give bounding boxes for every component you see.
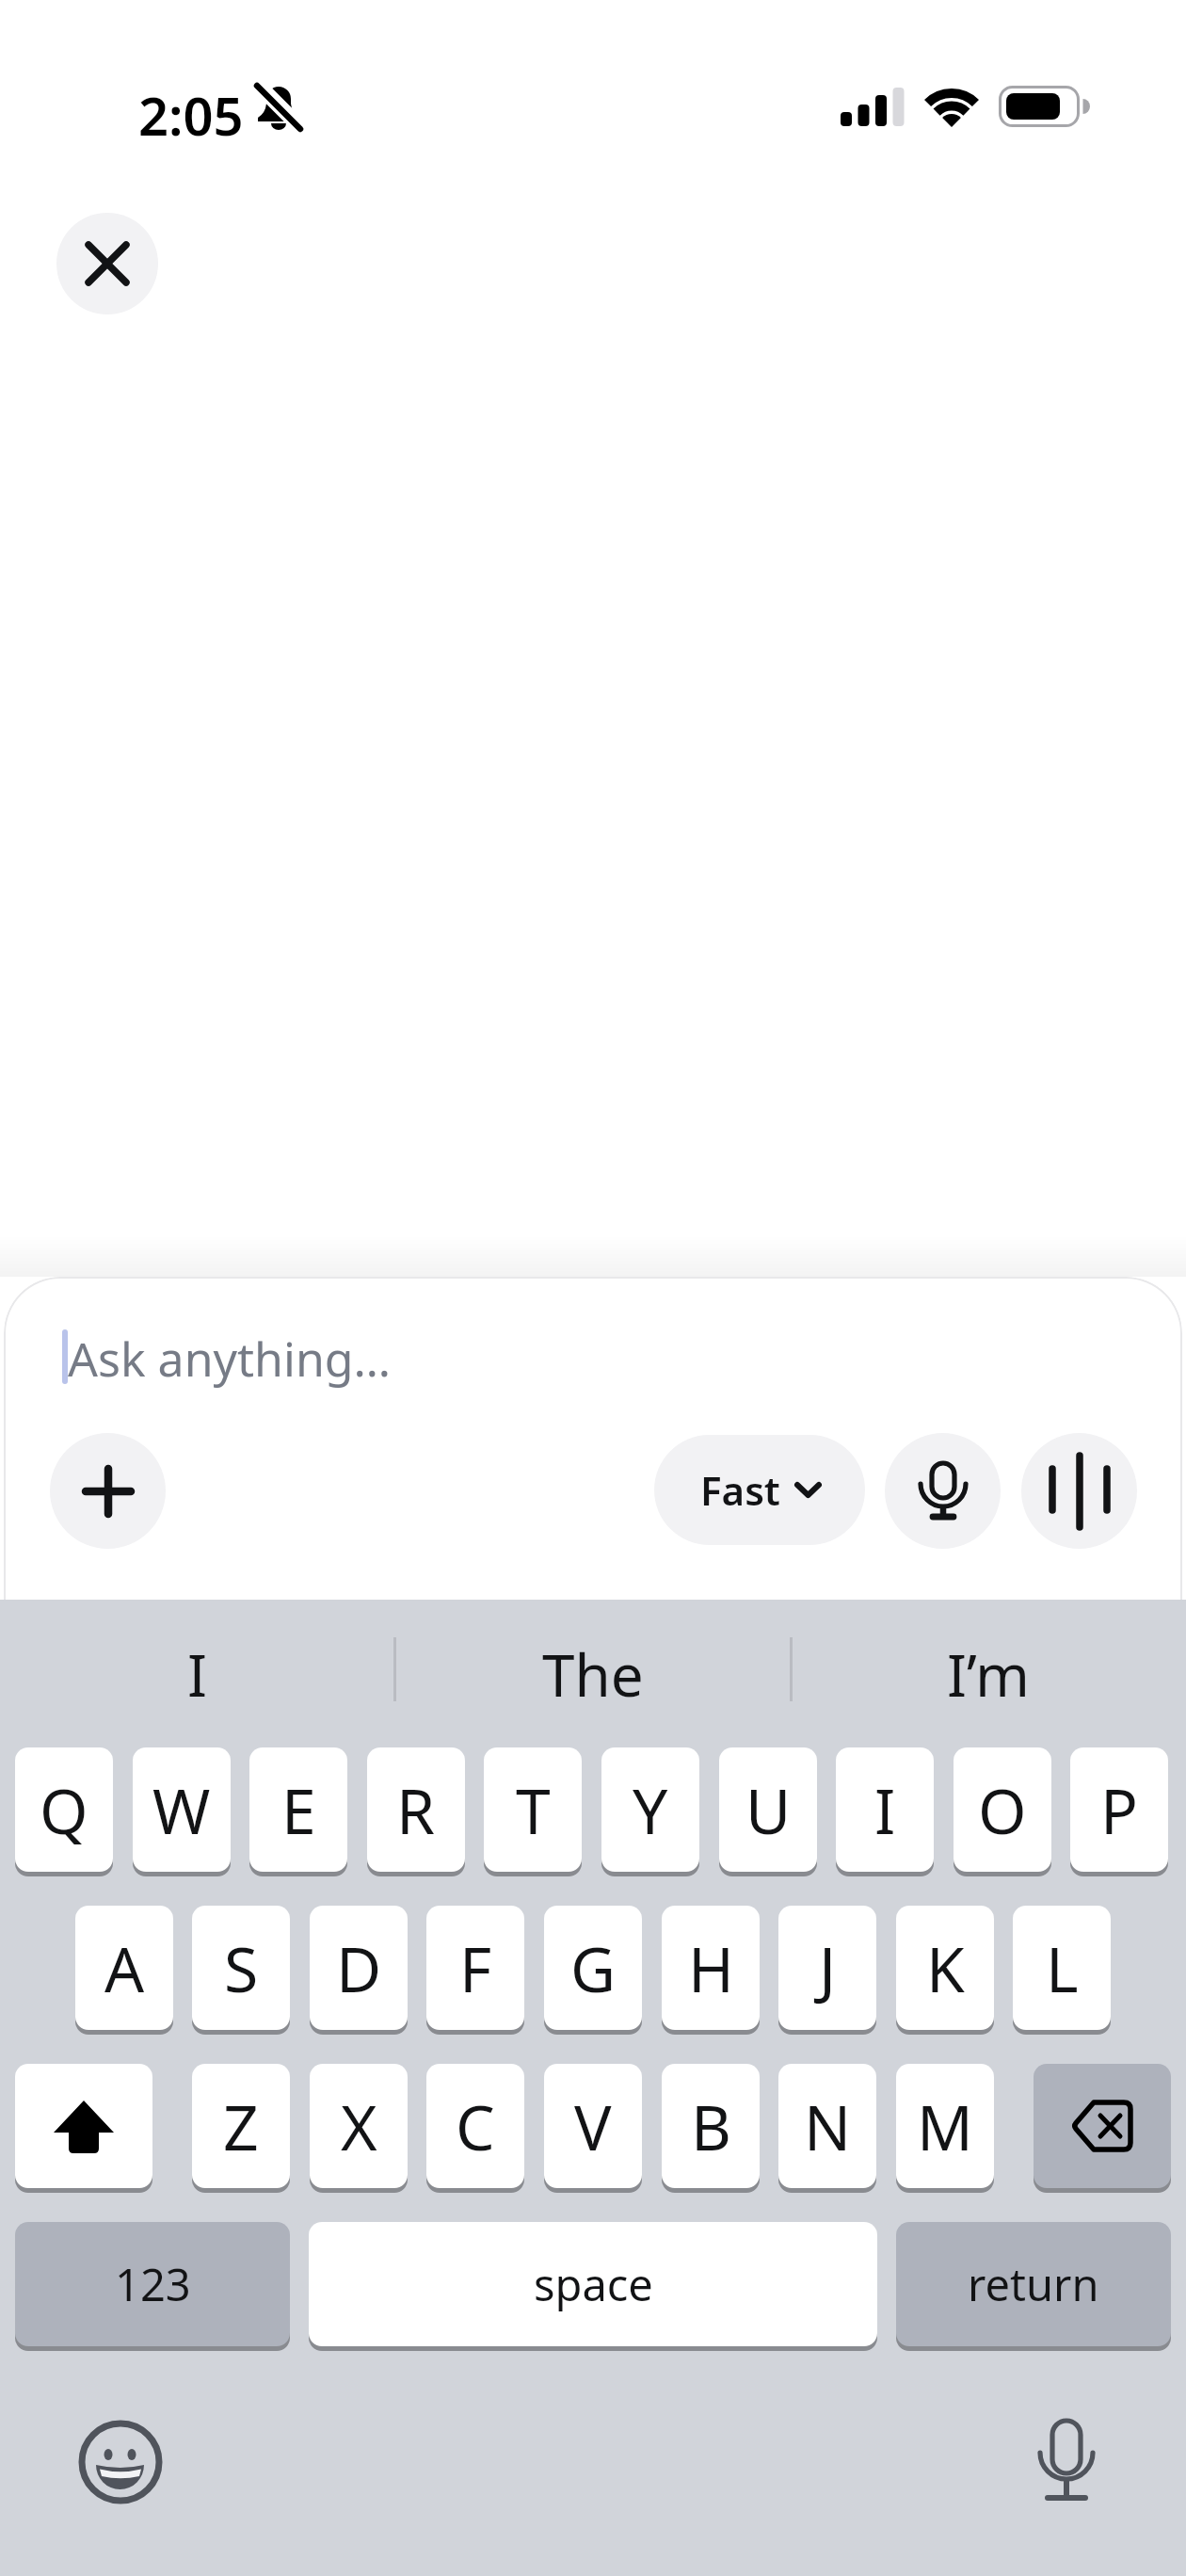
staticText: Fast [700,1463,780,1517]
staticText: B [691,2084,731,2168]
button[interactable]: A [75,1906,173,2030]
button[interactable]: R [367,1747,465,1872]
staticText: M [917,2084,973,2168]
button[interactable]: M [896,2064,994,2188]
button[interactable]: I’m [791,1600,1186,1747]
button[interactable]: Fast [654,1435,865,1545]
staticText: return [968,2254,1099,2314]
staticText: I [187,1634,208,1714]
button[interactable]: C [426,2064,524,2188]
button[interactable]: S [192,1906,290,2030]
staticText: I’m [947,1634,1030,1714]
button[interactable] [78,2420,163,2504]
button[interactable]: G [544,1906,642,2030]
button[interactable]: J [778,1906,876,2030]
staticText: Ask anything… [68,1327,392,1391]
button[interactable] [56,213,158,314]
staticText: D [336,1925,382,2010]
button[interactable]: The [395,1600,791,1747]
button[interactable]: K [896,1906,994,2030]
staticText: Q [40,1767,88,1852]
staticText: T [516,1767,551,1852]
button[interactable]: E [249,1747,347,1872]
button[interactable]: return [896,2222,1171,2346]
button[interactable] [50,1433,166,1549]
staticText: The [542,1634,644,1714]
button[interactable] [1021,1433,1137,1549]
staticText: S [224,1925,259,2010]
button[interactable]: I [836,1747,934,1872]
staticText: E [281,1767,316,1852]
button[interactable]: H [662,1906,760,2030]
button[interactable]: L [1013,1906,1111,2030]
staticText: H [688,1925,734,2010]
button[interactable]: 123 [15,2222,290,2346]
staticText: O [978,1767,1027,1852]
staticText: I [874,1767,896,1852]
button[interactable]: V [544,2064,642,2188]
staticText: X [341,2084,377,2168]
staticText: space [534,2254,653,2314]
staticText: 2:05 [138,79,244,139]
staticText: G [570,1925,617,2010]
button[interactable]: Q [15,1747,113,1872]
button[interactable] [1023,2415,1110,2505]
button[interactable]: Z [192,2064,290,2188]
button[interactable]: space [309,2222,877,2346]
button[interactable] [885,1433,1001,1549]
staticText: P [1100,1767,1138,1852]
button[interactable]: T [484,1747,582,1872]
button[interactable]: O [954,1747,1051,1872]
button[interactable]: F [426,1906,524,2030]
button[interactable] [15,2064,152,2188]
button[interactable]: B [662,2064,760,2188]
button[interactable]: D [310,1906,408,2030]
staticText: V [574,2084,612,2168]
staticText: J [819,1925,837,2010]
staticText: A [104,1925,145,2010]
button[interactable]: X [310,2064,408,2188]
button[interactable]: I [0,1600,395,1747]
staticText: L [1046,1925,1079,2010]
staticText: R [396,1767,436,1852]
button[interactable]: W [133,1747,231,1872]
staticText: F [459,1925,492,2010]
staticText: Y [633,1767,668,1852]
staticText: K [926,1925,965,2010]
staticText: N [804,2084,852,2168]
staticText: U [745,1767,792,1852]
staticText: C [456,2084,495,2168]
button[interactable]: U [719,1747,817,1872]
button[interactable]: N [778,2064,876,2188]
button[interactable]: Y [601,1747,699,1872]
staticText: Z [223,2084,259,2168]
button[interactable]: P [1070,1747,1168,1872]
staticText: 123 [115,2254,191,2314]
button[interactable] [1034,2064,1171,2188]
staticText: W [152,1767,211,1852]
